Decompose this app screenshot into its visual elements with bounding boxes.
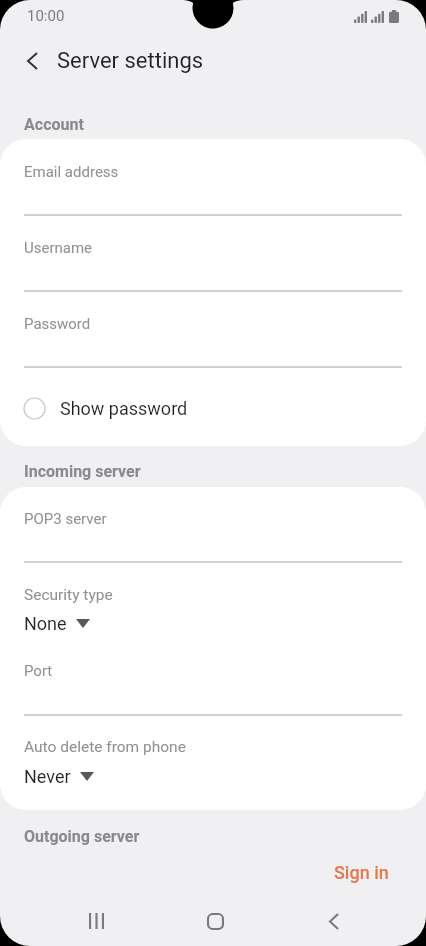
staticText: Server settings [57, 48, 204, 74]
staticText: Never [24, 766, 71, 787]
button[interactable]: Recent apps [66, 896, 126, 946]
staticText: 10:00 [27, 7, 65, 25]
staticText: Password [24, 315, 91, 333]
staticText: Incoming server [24, 462, 141, 481]
staticText: Outgoing server [24, 827, 140, 846]
staticText: Account [24, 115, 84, 134]
staticText: Show password [60, 398, 188, 419]
button[interactable]: Sign in [318, 852, 405, 893]
button[interactable]: None [0, 608, 426, 638]
button[interactable]: Email address [0, 151, 426, 193]
staticText: None [24, 613, 67, 634]
button[interactable]: Navigate up [8, 37, 56, 85]
staticText: Security type [24, 586, 113, 604]
staticText: POP3 server [24, 510, 107, 528]
button[interactable]: Username [0, 227, 426, 269]
staticText: Port [24, 662, 53, 680]
button[interactable]: Back [304, 896, 364, 946]
button[interactable]: Port [0, 650, 426, 692]
staticText: Email address [24, 163, 119, 181]
staticText: Username [24, 239, 93, 257]
staticText: Sign in [334, 862, 389, 883]
button[interactable]: POP3 server [0, 498, 426, 540]
staticText: Auto delete from phone [24, 738, 186, 756]
button[interactable]: Home [185, 896, 245, 946]
button[interactable]: Never [0, 761, 426, 791]
button[interactable]: Show password [0, 384, 426, 432]
button[interactable]: Password [0, 303, 426, 345]
